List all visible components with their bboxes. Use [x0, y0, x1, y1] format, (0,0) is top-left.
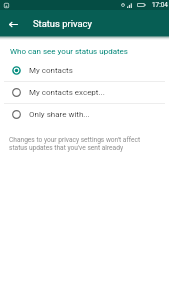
button[interactable]: My contacts — [0, 59, 169, 81]
staticText: Status privacy — [33, 18, 92, 29]
button[interactable]: Only share with... — [0, 103, 169, 125]
button[interactable]: My contacts except... — [0, 81, 169, 103]
staticText: My contacts — [29, 66, 73, 75]
staticText: My contacts except... — [29, 88, 105, 97]
staticText: Only share with... — [29, 110, 90, 119]
staticText: Changes to your privacy settings won't a… — [9, 136, 159, 152]
staticText: Who can see your status updates — [10, 47, 128, 56]
button[interactable]: Back — [1, 12, 25, 36]
staticText: 17:04 — [152, 1, 168, 9]
